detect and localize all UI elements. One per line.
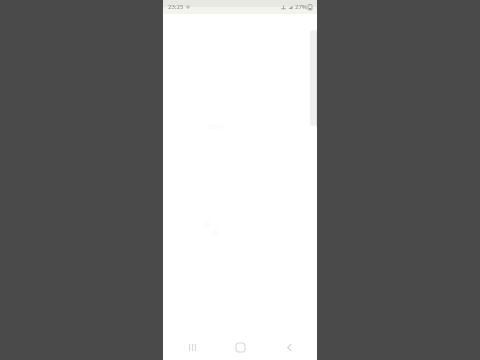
button[interactable]: Home [220,334,260,360]
button[interactable]: Back [269,334,309,360]
staticText: 27% [295,3,307,11]
button[interactable]: Recent apps [172,334,212,360]
staticText: 23:25 [168,3,184,11]
